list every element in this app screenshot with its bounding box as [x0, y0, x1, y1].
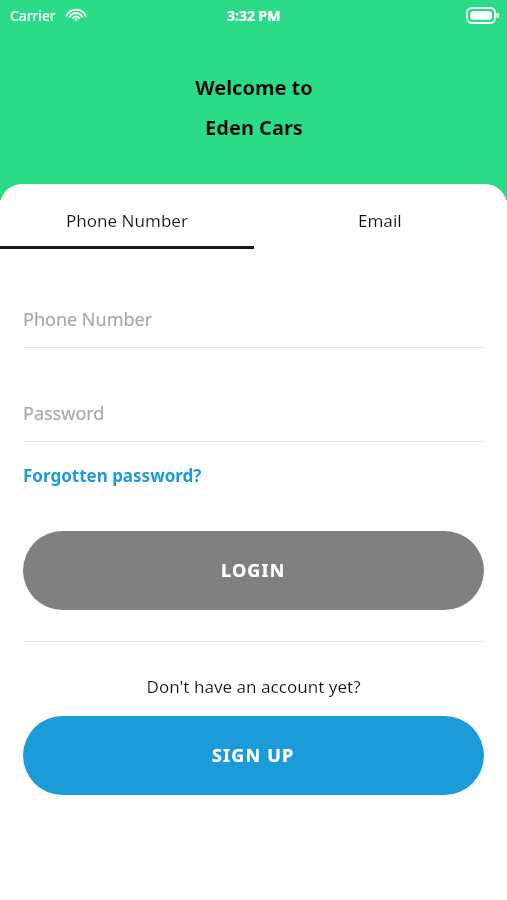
- staticText: Password: [23, 401, 105, 426]
- other: Battery full: [467, 8, 499, 23]
- button[interactable]: LOGIN: [23, 531, 484, 610]
- staticText: Email: [358, 209, 402, 232]
- staticText: Phone Number: [66, 209, 188, 232]
- staticText: Welcome to: [195, 74, 313, 101]
- staticText: 3:32 PM: [227, 6, 281, 25]
- button[interactable]: Password: [0, 394, 507, 442]
- staticText: Forgotten password?: [23, 464, 202, 487]
- button[interactable]: Forgotten password?: [23, 464, 202, 487]
- other: Wi-Fi signal: [67, 8, 85, 22]
- button[interactable]: Phone Number: [0, 192, 253, 249]
- staticText: Eden Cars: [205, 114, 303, 141]
- staticText: LOGIN: [221, 558, 286, 583]
- staticText: Phone Number: [23, 307, 153, 332]
- staticText: SIGN UP: [212, 743, 295, 768]
- button[interactable]: Email: [253, 192, 507, 249]
- button[interactable]: Phone Number: [0, 300, 507, 348]
- staticText: Don't have an account yet?: [146, 675, 361, 698]
- staticText: Carrier: [10, 6, 56, 25]
- button[interactable]: SIGN UP: [23, 716, 484, 795]
